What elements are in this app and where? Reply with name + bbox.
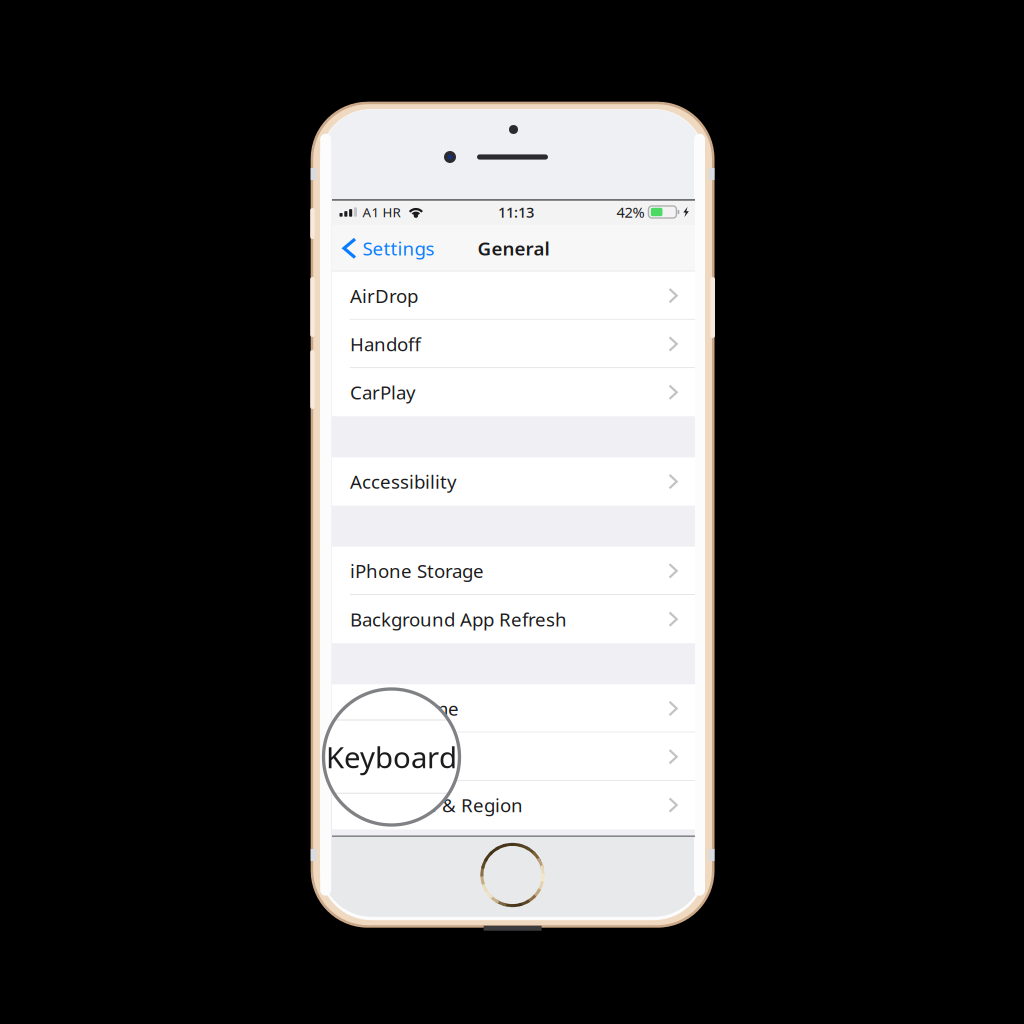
staticText: Accessibility [350,469,457,494]
staticText: Language & Region [350,793,523,817]
staticText: General [477,236,549,261]
staticText: Keyboard [326,737,457,776]
staticText: CarPlay [350,380,416,405]
button[interactable]: Language & Region [332,781,695,829]
button[interactable]: AirDrop [332,271,695,320]
staticText: Handoff [350,332,421,356]
button[interactable]: Background App Refresh [332,595,695,643]
staticText: iPhone Storage [350,558,484,583]
staticText: 42% [616,202,644,222]
button[interactable]: Handoff [332,320,695,368]
button[interactable]: Keyboard [332,733,695,781]
staticText: AirDrop [350,283,418,308]
staticText: Date & Time [350,696,459,721]
button[interactable]: iPhone Storage [332,547,695,595]
staticText: Background App Refresh [350,607,567,632]
staticText: 11:13 [498,202,534,222]
staticText: Settings [362,236,434,261]
staticText: A1 HR [362,203,400,221]
button[interactable]: CarPlay [332,368,695,416]
button[interactable]: Settings [332,227,440,270]
button[interactable]: Date & Time [332,684,695,733]
button[interactable]: Accessibility [332,457,695,506]
staticText: Keyboard [350,744,432,769]
